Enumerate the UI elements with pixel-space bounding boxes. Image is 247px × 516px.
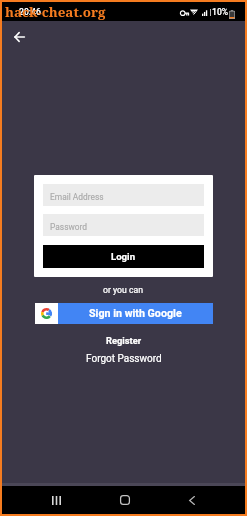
button[interactable]: Back	[178, 486, 206, 514]
button[interactable]: Recent apps	[42, 486, 70, 514]
button[interactable]: Register	[2, 333, 245, 347]
staticText: Login	[111, 251, 136, 262]
staticText: Password	[50, 222, 88, 232]
staticText: Sign in with Google	[89, 307, 182, 320]
staticText: or you can	[103, 285, 144, 295]
staticText: Email Address	[50, 192, 104, 202]
staticText: 20:46	[19, 7, 41, 17]
staticText: 10%	[212, 7, 229, 17]
button[interactable]: Sign in with Google	[35, 303, 213, 324]
staticText: Forgot Password	[86, 353, 162, 365]
button[interactable]: Password	[43, 214, 204, 236]
button[interactable]: Forgot Password	[2, 352, 245, 366]
button[interactable]: Home	[111, 486, 139, 514]
staticText: Register	[106, 335, 142, 346]
button[interactable]: Back	[6, 23, 33, 50]
button[interactable]: Email Address	[43, 184, 204, 206]
staticText: hack-cheat.org	[5, 3, 106, 21]
button[interactable]: Login	[43, 245, 204, 268]
